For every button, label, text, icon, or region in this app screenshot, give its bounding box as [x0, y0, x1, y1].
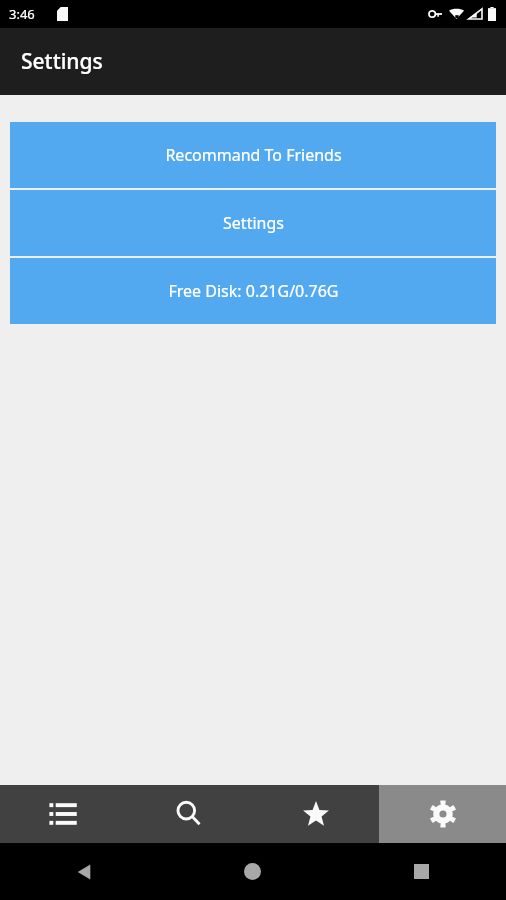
button[interactable]: Free Disk: 0.21G/0.76G	[10, 258, 496, 324]
staticText: Settings	[21, 47, 103, 76]
button[interactable]: Favorites	[252, 785, 379, 843]
button[interactable]: Settings	[10, 190, 496, 256]
staticText: Settings	[223, 212, 284, 234]
button[interactable]: Search	[126, 785, 252, 843]
staticText: 3:46	[9, 5, 35, 23]
button[interactable]: Recommand To Friends	[10, 122, 496, 188]
staticText: Recommand To Friends	[165, 144, 342, 166]
button[interactable]: Home	[168, 843, 337, 900]
button[interactable]: Settings	[379, 785, 506, 843]
button[interactable]: List	[0, 785, 126, 843]
button[interactable]: Back	[0, 843, 168, 900]
button[interactable]: Recent apps	[337, 843, 506, 900]
staticText: Free Disk: 0.21G/0.76G	[168, 280, 339, 302]
